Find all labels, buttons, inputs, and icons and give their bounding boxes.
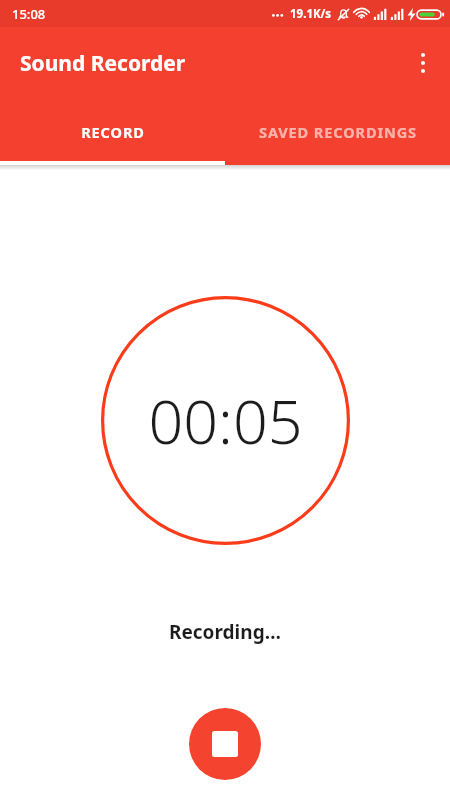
staticText: Recording… <box>169 619 281 645</box>
staticText: 19.1K/s <box>290 6 332 22</box>
button[interactable]: SAVED RECORDINGS <box>225 99 450 165</box>
button[interactable]: More options <box>400 40 446 86</box>
button[interactable]: Stop recording <box>189 708 261 780</box>
staticText: 00:05 <box>148 379 303 462</box>
staticText: RECORD <box>81 122 145 142</box>
staticText: SAVED RECORDINGS <box>259 122 417 142</box>
staticText: Sound Recorder <box>20 49 186 78</box>
staticText: 15:08 <box>12 5 46 23</box>
button[interactable]: RECORD <box>0 99 225 165</box>
